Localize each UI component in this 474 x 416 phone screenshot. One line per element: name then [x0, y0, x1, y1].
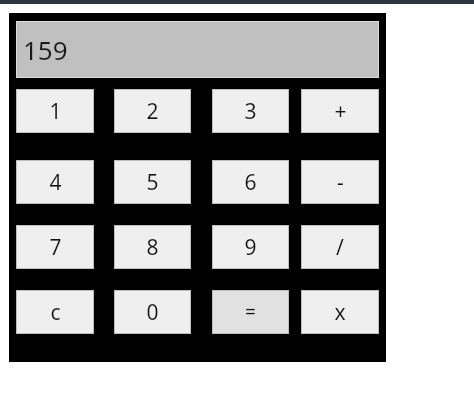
- staticText: =: [245, 299, 256, 325]
- staticText: +: [334, 97, 347, 126]
- button[interactable]: +: [302, 90, 378, 132]
- button[interactable]: 9: [213, 226, 288, 268]
- staticText: 5: [146, 168, 159, 197]
- staticText: c: [50, 298, 61, 327]
- button[interactable]: 2: [115, 90, 190, 132]
- button[interactable]: 7: [17, 226, 93, 268]
- staticText: 1: [49, 97, 62, 126]
- button[interactable]: 1: [17, 90, 93, 132]
- button[interactable]: 5: [115, 161, 190, 203]
- staticText: 6: [244, 168, 257, 197]
- button[interactable]: x: [302, 291, 378, 333]
- staticText: -: [337, 168, 344, 197]
- button[interactable]: -: [302, 161, 378, 203]
- button[interactable]: /: [302, 226, 378, 268]
- button[interactable]: 4: [17, 161, 93, 203]
- button[interactable]: 6: [213, 161, 288, 203]
- button[interactable]: =: [213, 291, 288, 333]
- staticText: 7: [49, 233, 62, 262]
- staticText: x: [334, 298, 346, 327]
- button[interactable]: c: [17, 291, 93, 333]
- button[interactable]: 0: [115, 291, 190, 333]
- staticText: 0: [146, 298, 159, 327]
- staticText: 159: [23, 32, 68, 67]
- staticText: 2: [146, 97, 159, 126]
- staticText: 8: [146, 233, 159, 262]
- staticText: 9: [244, 233, 257, 262]
- button[interactable]: 8: [115, 226, 190, 268]
- staticText: 3: [244, 97, 257, 126]
- button[interactable]: 3: [213, 90, 288, 132]
- staticText: /: [336, 233, 344, 262]
- staticText: 4: [49, 168, 62, 197]
